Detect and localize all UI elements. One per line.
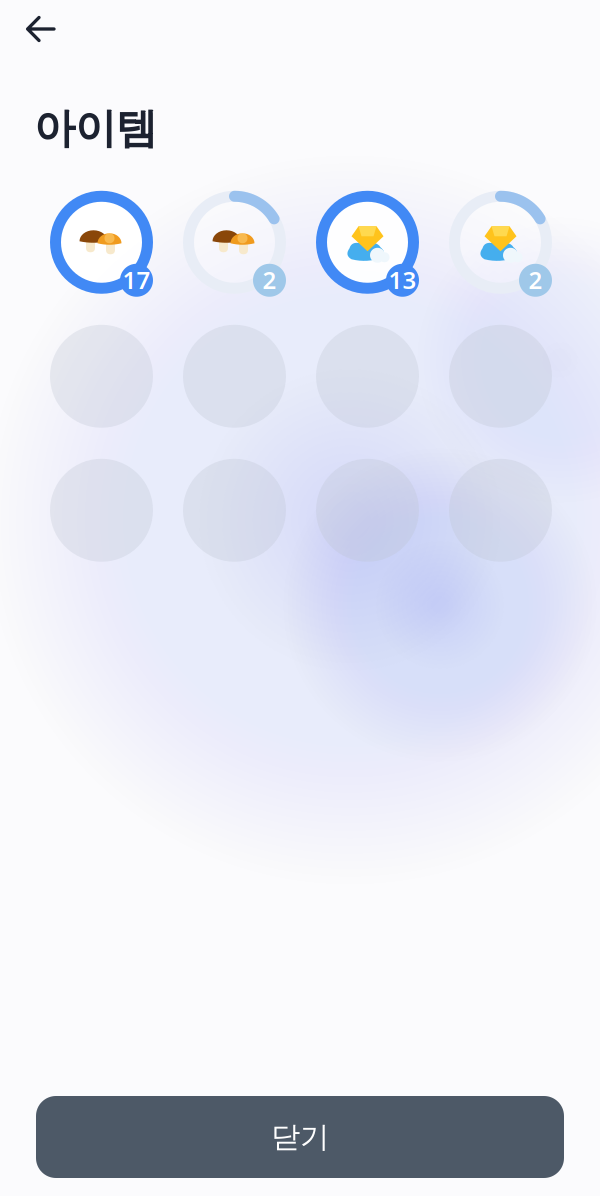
staticText: 닫기 [271,1119,329,1155]
staticText: 2 [528,264,542,296]
button[interactable]: 닫기 [36,1096,564,1178]
staticText: 17 [122,264,150,296]
button[interactable]: 2 [449,191,552,294]
staticText: 13 [388,264,416,296]
staticText: 2 [262,264,276,296]
button[interactable]: Back [19,6,63,52]
button[interactable]: 13 [316,191,419,294]
button[interactable]: 17 [50,191,153,294]
staticText: 아이템 [34,103,157,154]
button[interactable]: 2 [183,191,286,294]
